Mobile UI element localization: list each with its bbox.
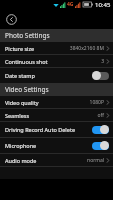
staticText: 3 xyxy=(101,58,104,65)
button[interactable]: Driving Record Auto Delete xyxy=(0,122,113,137)
button[interactable]: Seamless xyxy=(0,109,113,121)
button[interactable]: Picture size xyxy=(0,42,113,54)
staticText: off xyxy=(97,112,104,119)
staticText: Picture size xyxy=(5,45,69,52)
staticText: 4G xyxy=(67,1,74,8)
staticText: Video quality xyxy=(5,99,89,106)
staticText: Video Settings xyxy=(5,85,49,94)
staticText: Microphone xyxy=(5,142,90,149)
staticText: 1080P xyxy=(89,99,104,106)
button[interactable]: Date stamp xyxy=(0,68,113,83)
staticText: Date stamp xyxy=(5,72,90,79)
button[interactable]: Audio mode xyxy=(0,154,113,166)
button[interactable]: Continuous shot xyxy=(0,55,113,67)
staticText: Continuous shot xyxy=(5,58,101,65)
staticText: Photo Settings xyxy=(5,31,50,40)
staticText: Seamless xyxy=(5,112,97,119)
button[interactable]: Back xyxy=(3,11,19,27)
button[interactable]: Video quality xyxy=(0,96,113,108)
staticText: 10:45 xyxy=(95,1,111,9)
staticText: 3840x2160 8M xyxy=(69,45,104,52)
staticText: Driving Record Auto Delete xyxy=(5,126,90,133)
button[interactable]: Microphone xyxy=(0,138,113,153)
staticText: Audio mode xyxy=(5,157,87,164)
staticText: normal xyxy=(87,157,104,164)
